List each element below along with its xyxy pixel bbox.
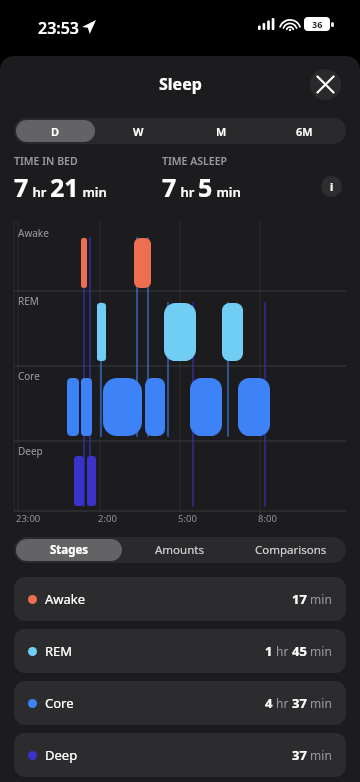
staticText: 23:53 [38, 17, 80, 39]
staticText: REM [18, 294, 39, 308]
staticText: 36 [312, 18, 323, 30]
button[interactable]: M [182, 120, 261, 142]
staticText: 7 [14, 170, 29, 204]
staticText: min [307, 747, 332, 763]
staticText: hr [273, 695, 292, 711]
staticText: 5:00 [178, 512, 197, 525]
staticText: Stages [50, 542, 89, 558]
button[interactable]: Awake [14, 577, 346, 621]
staticText: i [330, 179, 334, 194]
staticText: Awake [45, 590, 86, 608]
staticText: Amounts [155, 542, 204, 558]
staticText: hr [29, 183, 50, 201]
button[interactable]: Close [310, 69, 341, 100]
staticText: TIME ASLEEP [162, 154, 227, 168]
button[interactable]: Core [14, 681, 346, 725]
staticText: min [307, 643, 332, 659]
staticText: Core [45, 694, 74, 712]
staticText: 21 [50, 170, 79, 204]
button[interactable]: Deep [14, 733, 346, 777]
staticText: Core [18, 369, 40, 383]
button[interactable]: Comparisons [237, 539, 344, 561]
staticText: 1 [265, 642, 273, 660]
button[interactable]: REM [14, 629, 346, 673]
staticText: 45 [292, 642, 307, 660]
staticText: hr [273, 643, 292, 659]
staticText: 37 [292, 694, 307, 712]
staticText: Comparisons [255, 542, 327, 558]
button[interactable]: Stages [16, 539, 122, 561]
staticText: min [307, 591, 332, 607]
staticText: TIME IN BED [14, 154, 78, 168]
staticText: 17 [292, 590, 307, 608]
staticText: min [79, 183, 107, 201]
button[interactable]: 6M [265, 120, 344, 142]
button[interactable]: Info [321, 176, 342, 197]
staticText: Deep [18, 444, 43, 458]
button[interactable]: Amounts [126, 539, 233, 561]
staticText: 23:00 [16, 512, 41, 525]
staticText: 2:00 [98, 512, 117, 525]
staticText: 5 [198, 170, 213, 204]
staticText: Sleep [159, 73, 202, 95]
staticText: 7 [162, 170, 177, 204]
staticText: REM [45, 642, 73, 660]
button[interactable]: W [99, 120, 178, 142]
staticText: 4 [265, 694, 273, 712]
staticText: Deep [45, 746, 78, 764]
staticText: min [213, 183, 241, 201]
staticText: hr [177, 183, 198, 201]
staticText: 37 [292, 746, 307, 764]
staticText: W [133, 124, 144, 139]
staticText: Awake [18, 226, 49, 240]
button[interactable]: D [16, 120, 95, 142]
staticText: 8:00 [258, 512, 277, 525]
staticText: min [307, 695, 332, 711]
staticText: D [51, 124, 60, 139]
staticText: M [216, 124, 227, 139]
staticText: 6M [296, 124, 313, 139]
